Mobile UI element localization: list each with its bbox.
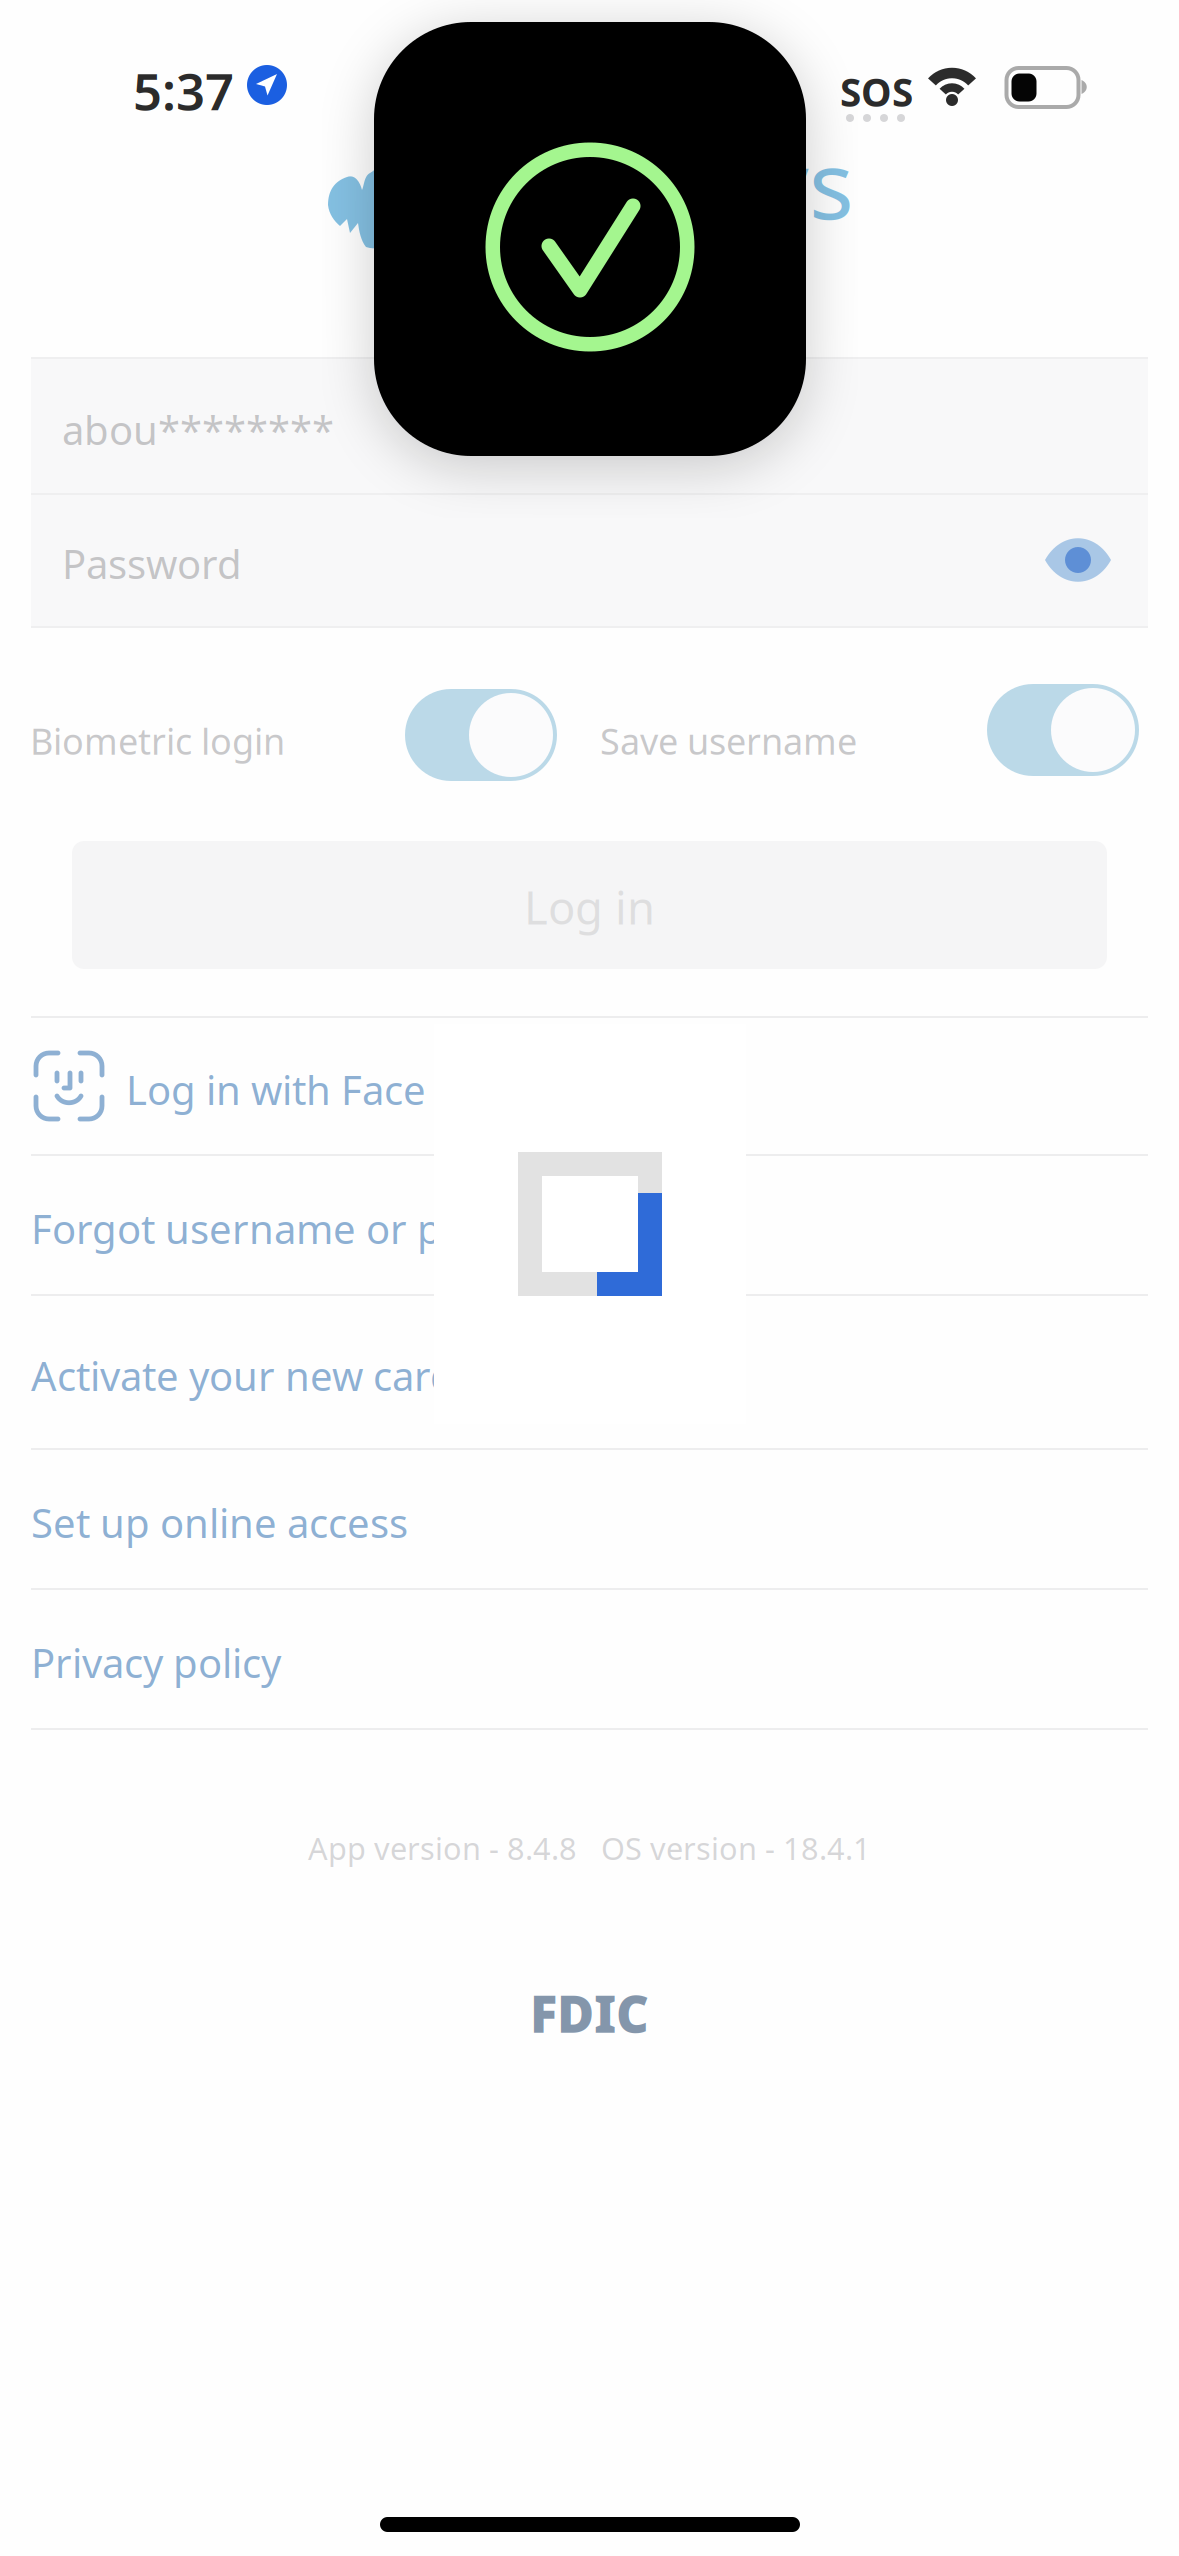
staticText: Set up online access bbox=[31, 1496, 408, 1549]
staticText: 5:37 bbox=[133, 57, 234, 124]
staticText: Forgot username or password bbox=[31, 1202, 598, 1255]
button[interactable]: Activate your new card bbox=[0, 1296, 1179, 1448]
staticText: FDIC bbox=[530, 1979, 649, 2047]
button[interactable]: Forgot username or password bbox=[0, 1156, 1179, 1294]
button[interactable]: Save username bbox=[987, 684, 1139, 776]
button[interactable]: Show password bbox=[1043, 535, 1113, 585]
staticText: Save username bbox=[600, 717, 857, 765]
button[interactable]: Privacy policy bbox=[0, 1590, 1179, 1728]
staticText: abou******** bbox=[62, 403, 334, 456]
button[interactable]: Set up online access bbox=[0, 1450, 1179, 1588]
staticText: Log in with Face ID bbox=[126, 1063, 479, 1116]
staticText: Barclays bbox=[490, 121, 854, 245]
staticText: Privacy policy bbox=[31, 1636, 281, 1689]
staticText: SOS bbox=[840, 66, 913, 117]
button[interactable]: Log in with Face ID bbox=[0, 1018, 1179, 1154]
button[interactable]: Biometric login bbox=[405, 689, 557, 781]
button[interactable]: Password bbox=[31, 493, 1148, 626]
staticText: Activate your new card bbox=[31, 1349, 455, 1402]
staticText: Password bbox=[62, 537, 242, 590]
staticText: App version - 8.4.8 OS version - 18.4.1 bbox=[308, 1828, 871, 1868]
staticText: Biometric login bbox=[30, 717, 285, 765]
button[interactable]: abou******** bbox=[31, 357, 1148, 493]
staticText: Log in bbox=[524, 877, 655, 937]
